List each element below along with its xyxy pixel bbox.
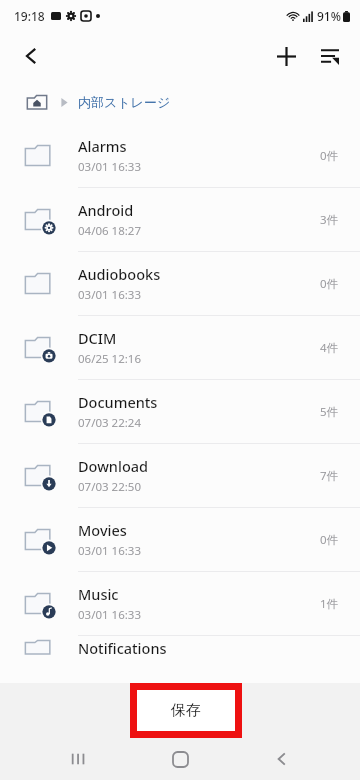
staticText: 03/01 16:33	[78, 607, 141, 623]
button[interactable]: Music	[0, 572, 360, 636]
staticText: Download	[78, 456, 149, 476]
staticText: 04/06 18:27	[78, 223, 141, 239]
staticText: Movies	[78, 520, 127, 540]
button[interactable]: Documents	[0, 380, 360, 444]
button[interactable]: Sort	[308, 34, 352, 78]
staticText: 03/01 16:33	[78, 287, 141, 303]
staticText: 03/01 16:33	[78, 543, 141, 559]
staticText: 3件	[319, 212, 338, 228]
staticText: 19:18	[14, 8, 45, 24]
staticText: Alarms	[78, 136, 127, 156]
button[interactable]: Movies	[0, 508, 360, 572]
staticText: 0件	[319, 148, 338, 164]
staticText: 06/25 12:16	[78, 351, 141, 367]
staticText: 保存	[171, 701, 201, 720]
staticText: 07/03 22:24	[78, 415, 141, 431]
staticText: 07/03 22:50	[78, 479, 141, 495]
button[interactable]: Audiobooks	[0, 252, 360, 316]
button[interactable]: Add	[264, 34, 308, 78]
button[interactable]: 保存	[137, 690, 235, 731]
staticText: 91%	[317, 8, 341, 24]
staticText: 0件	[319, 276, 338, 292]
button[interactable]: Home	[156, 738, 204, 780]
staticText: Notifications	[78, 638, 167, 658]
button[interactable]: 内部ストレージ	[78, 94, 171, 110]
button[interactable]: Alarms	[0, 124, 360, 188]
button[interactable]: Back	[258, 738, 306, 780]
button[interactable]: Home folder	[24, 89, 50, 115]
staticText: 5件	[319, 404, 338, 420]
staticText: Android	[78, 200, 134, 220]
button[interactable]: Back	[10, 34, 54, 78]
staticText: Music	[78, 584, 119, 604]
button[interactable]: DCIM	[0, 316, 360, 380]
staticText: Audiobooks	[78, 264, 161, 284]
staticText: 03/01 16:33	[78, 159, 141, 175]
button[interactable]: Recents	[54, 738, 102, 780]
staticText: 0件	[319, 532, 338, 548]
staticText: 7件	[319, 468, 338, 484]
staticText: Documents	[78, 392, 158, 412]
button[interactable]: Android	[0, 188, 360, 252]
button[interactable]: Download	[0, 444, 360, 508]
staticText: 1件	[319, 596, 338, 612]
staticText: DCIM	[78, 328, 117, 348]
staticText: 4件	[319, 340, 338, 356]
staticText: 内部ストレージ	[78, 94, 171, 110]
